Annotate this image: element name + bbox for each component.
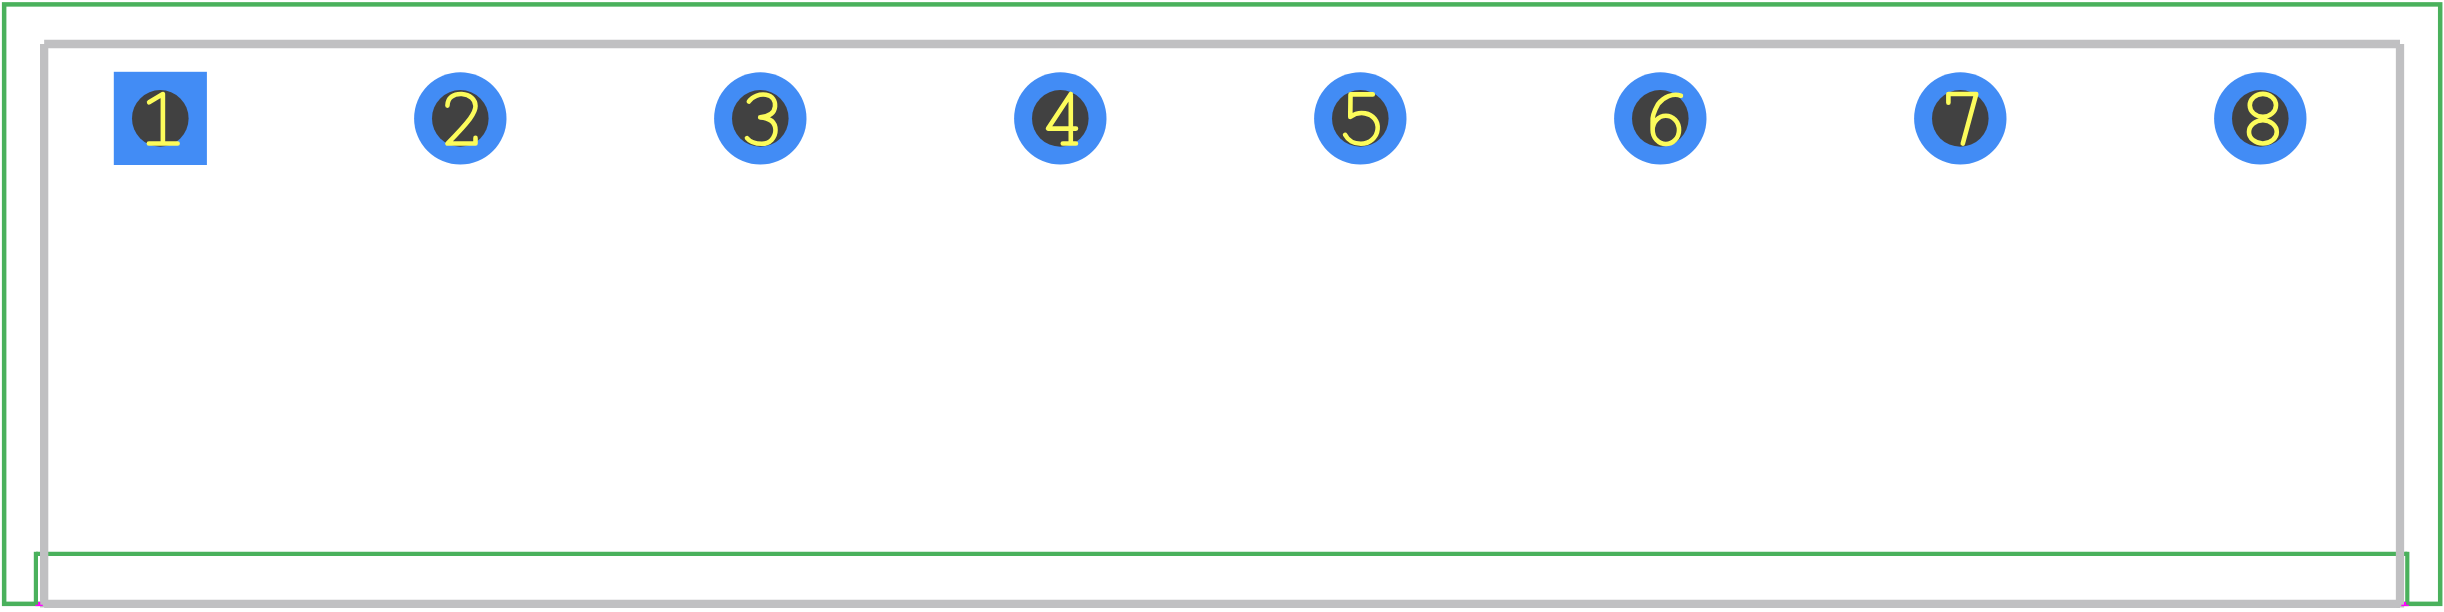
button[interactable]: Pad 3 xyxy=(714,72,807,165)
button[interactable]: Pad 5 xyxy=(1314,72,1407,165)
button[interactable]: Pad 2 xyxy=(414,72,507,165)
button[interactable]: Pad 1 xyxy=(114,72,207,165)
button[interactable]: Pad 8 xyxy=(2214,72,2307,165)
button[interactable]: Pad 7 xyxy=(1914,72,2007,165)
button[interactable]: Pad 6 xyxy=(1614,72,1707,165)
button[interactable]: Pad 4 xyxy=(1014,72,1107,165)
